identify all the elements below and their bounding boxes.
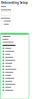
- button[interactable]: [0, 47, 29, 50]
- button[interactable]: [0, 59, 29, 62]
- button[interactable]: [0, 50, 29, 53]
- button[interactable]: [0, 53, 29, 56]
- button[interactable]: [0, 77, 29, 80]
- button[interactable]: [0, 65, 29, 68]
- button[interactable]: [0, 83, 29, 86]
- button[interactable]: [0, 86, 29, 89]
- button[interactable]: [0, 56, 29, 59]
- button[interactable]: [0, 62, 29, 65]
- button[interactable]: [0, 68, 29, 71]
- staticText: Onboarding Setup: [1, 1, 28, 4]
- button[interactable]: [0, 71, 29, 74]
- button[interactable]: [0, 89, 29, 92]
- button[interactable]: [0, 80, 29, 83]
- button[interactable]: [0, 74, 29, 77]
